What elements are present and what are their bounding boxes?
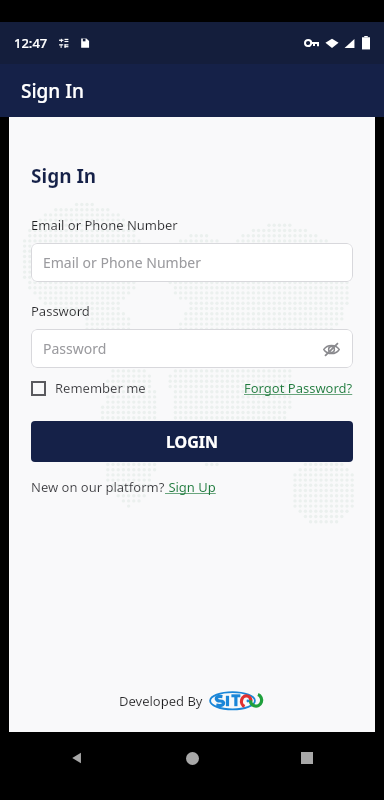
button[interactable]: Show password — [319, 337, 343, 361]
staticText: Sign Up — [165, 478, 216, 496]
button[interactable]: Recents — [290, 741, 324, 775]
button[interactable]: Remember me — [31, 379, 146, 397]
button[interactable]: Sign Up — [165, 478, 216, 496]
staticText: Remember me — [55, 379, 146, 397]
staticText: Password — [43, 339, 107, 358]
button[interactable]: Forgot Password? — [244, 379, 353, 397]
staticText: LOGIN — [166, 431, 219, 453]
staticText: Email or Phone Number — [31, 216, 178, 234]
button[interactable]: Sign In — [0, 64, 384, 117]
staticText: Sign In — [31, 163, 97, 189]
staticText: Developed By — [119, 692, 203, 710]
staticText: New on our platform? — [31, 478, 165, 496]
button[interactable]: Email or Phone Number — [31, 243, 353, 282]
button[interactable]: Home — [175, 741, 209, 775]
staticText: Forgot Password? — [244, 379, 353, 397]
staticText: Email or Phone Number — [43, 253, 201, 272]
staticText: Sign In — [21, 78, 84, 104]
button[interactable]: Password — [31, 329, 353, 368]
button[interactable]: LOGIN — [31, 421, 353, 462]
staticText: Password — [31, 302, 90, 320]
button[interactable]: Back — [60, 741, 94, 775]
staticText: 12:47 — [14, 34, 48, 52]
